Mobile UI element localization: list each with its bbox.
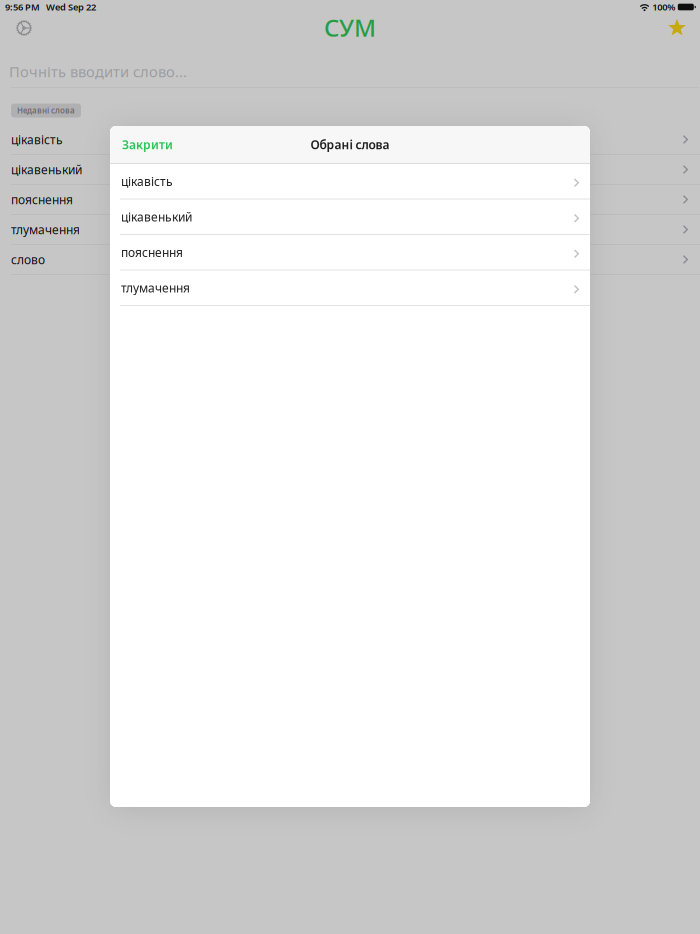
button[interactable]: Favourite words: [661, 14, 693, 42]
staticText: Почніть вводити слово...: [9, 62, 187, 81]
staticText: слово: [11, 251, 45, 267]
button[interactable]: пояснення: [0, 185, 700, 215]
staticText: тлумачення: [121, 280, 190, 296]
button[interactable]: слово: [0, 245, 700, 275]
button[interactable]: цікавенький: [110, 199, 590, 235]
staticText: Недавні слова: [17, 105, 75, 116]
staticText: пояснення: [121, 244, 183, 260]
button[interactable]: тлумачення: [0, 215, 700, 245]
staticText: цікавенький: [11, 161, 82, 177]
button[interactable]: цікавість: [110, 164, 590, 199]
staticText: 100%: [652, 1, 675, 13]
staticText: тлумачення: [11, 221, 80, 237]
button[interactable]: Закрити: [110, 126, 185, 163]
staticText: цікавість: [11, 131, 63, 147]
button[interactable]: Недавні слова: [11, 95, 81, 117]
staticText: цікавенький: [121, 209, 192, 225]
staticText: Закрити: [122, 136, 173, 152]
button[interactable]: тлумачення: [110, 270, 590, 306]
staticText: 9:56 PM Wed Sep 22: [5, 1, 96, 13]
button[interactable]: цікавенький: [0, 155, 700, 185]
staticText: Обрані слова: [310, 136, 389, 152]
button[interactable]: пояснення: [110, 235, 590, 270]
button[interactable]: цікавість: [0, 125, 700, 155]
staticText: СУМ: [324, 12, 376, 43]
staticText: цікавість: [121, 173, 173, 189]
staticText: пояснення: [11, 191, 73, 207]
button[interactable]: Settings: [8, 14, 40, 42]
